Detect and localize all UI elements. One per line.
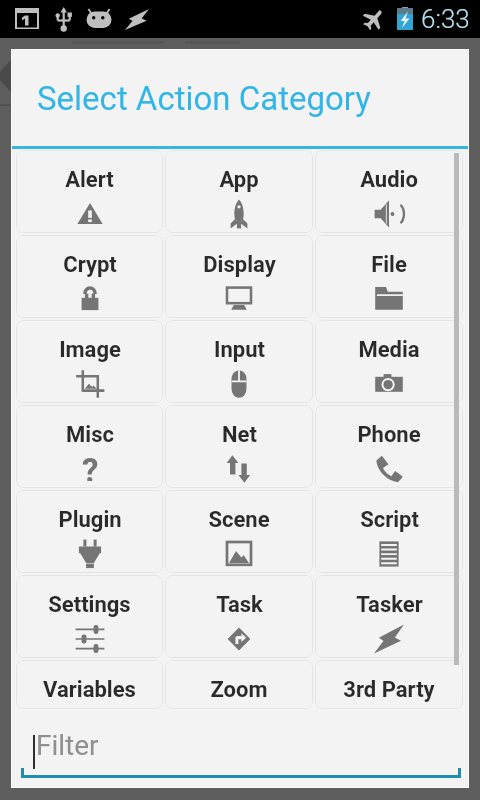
staticText: File	[371, 252, 407, 278]
staticText: App	[219, 167, 259, 193]
staticText: Task	[216, 592, 263, 618]
staticText: Variables	[43, 677, 136, 703]
button[interactable]: File	[315, 235, 463, 318]
staticText: Display	[203, 252, 276, 278]
button[interactable]: Misc	[16, 405, 163, 488]
staticText: 3rd Party	[343, 677, 435, 703]
button[interactable]: Script	[315, 490, 463, 573]
button[interactable]: Filter	[12, 710, 468, 787]
staticText: Filter	[36, 729, 99, 762]
staticText: ?	[82, 451, 99, 481]
button[interactable]: Display	[165, 235, 313, 318]
button[interactable]: Tasker	[315, 575, 463, 658]
button[interactable]: Crypt	[16, 235, 163, 318]
staticText: Settings	[48, 592, 131, 618]
staticText: Alert	[65, 167, 114, 193]
staticText: Input	[214, 337, 265, 363]
staticText: Scene	[208, 507, 270, 533]
staticText: Select Action Category	[37, 79, 371, 118]
staticText: Media	[358, 337, 420, 363]
button[interactable]: 3rd Party	[315, 660, 463, 709]
button[interactable]: Phone	[315, 405, 463, 488]
staticText: Audio	[360, 167, 418, 193]
button[interactable]: Variables	[16, 660, 163, 709]
staticText: Plugin	[58, 507, 122, 533]
button[interactable]: App	[165, 150, 313, 233]
button[interactable]: Media	[315, 320, 463, 403]
staticText: Image	[59, 337, 121, 363]
button[interactable]: Settings	[16, 575, 163, 658]
button[interactable]: Task	[165, 575, 313, 658]
staticText: Net	[222, 422, 257, 448]
staticText: 6:33	[421, 4, 470, 34]
button[interactable]: Image	[16, 320, 163, 403]
button[interactable]: Net	[165, 405, 313, 488]
staticText: Misc	[66, 422, 114, 448]
staticText: Script	[360, 507, 419, 533]
staticText: Zoom	[210, 677, 268, 703]
button[interactable]: Plugin	[16, 490, 163, 573]
staticText: Phone	[357, 422, 421, 448]
button[interactable]: Scene	[165, 490, 313, 573]
button[interactable]: Audio	[315, 150, 463, 233]
staticText: Tasker	[356, 592, 423, 618]
button[interactable]: Zoom	[165, 660, 313, 709]
staticText: Crypt	[63, 252, 117, 278]
button[interactable]: Alert	[16, 150, 163, 233]
button[interactable]: Input	[165, 320, 313, 403]
